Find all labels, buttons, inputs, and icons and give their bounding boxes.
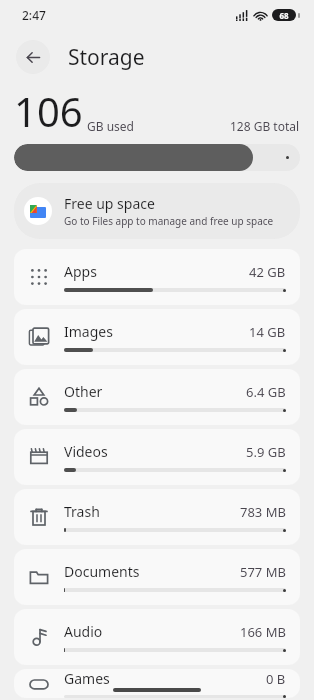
button[interactable]: Apps [14,249,300,305]
staticText: 2:47 [22,7,46,23]
staticText: Apps [64,262,97,281]
staticText: Go to Files app to manage and free up sp… [64,214,274,228]
button[interactable]: Videos [14,429,300,485]
button[interactable]: Documents [14,549,300,605]
staticText: Audio [64,622,103,641]
button[interactable]: Images [14,309,300,365]
button[interactable]: Free up space [14,183,300,239]
staticText: Free up space [64,194,155,213]
button[interactable]: Trash [14,489,300,545]
button[interactable]: Games [14,669,300,698]
staticText: Videos [64,442,108,461]
button[interactable]: Audio [14,609,300,665]
staticText: 5.9 GB [246,443,286,461]
staticText: GB used [87,118,134,134]
staticText: 106 [14,84,83,138]
staticText: 0 B [266,670,286,688]
staticText: 128 GB total [230,118,300,134]
button[interactable]: Back [16,40,50,74]
staticText: Documents [64,562,140,581]
button[interactable]: Other [14,369,300,425]
staticText: 577 MB [240,563,286,581]
staticText: Images [64,322,113,341]
staticText: 783 MB [240,503,286,521]
staticText: Trash [64,502,100,521]
staticText: 68 [279,10,289,21]
staticText: 166 MB [240,623,286,641]
staticText: Storage [68,43,145,72]
staticText: Games [64,669,110,688]
staticText: 14 GB [249,323,286,341]
staticText: 42 GB [249,263,286,281]
staticText: Other [64,382,103,401]
staticText: 6.4 GB [246,383,286,401]
